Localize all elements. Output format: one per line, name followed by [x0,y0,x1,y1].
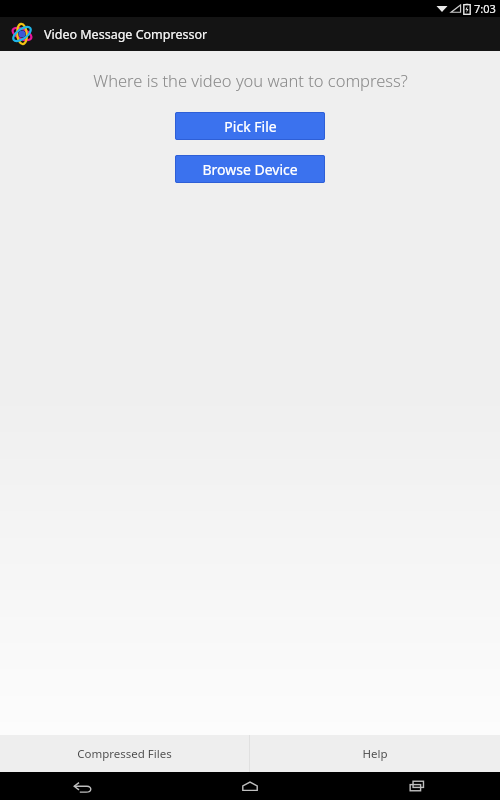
button[interactable]: Compressed Files [0,735,249,772]
staticText: Help [362,746,388,762]
staticText: Browse Device [202,160,298,179]
staticText: 7:03 [474,1,496,16]
button[interactable]: Back [0,772,166,800]
button[interactable]: Pick File [175,112,325,140]
staticText: Pick File [224,117,277,136]
staticText: Compressed Files [77,746,172,762]
staticText: Where is the video you want to compress? [93,69,408,91]
staticText: Video Message Compressor [44,26,208,43]
button[interactable]: Help [250,735,500,772]
button[interactable]: Browse Device [175,155,325,183]
button[interactable]: Home [166,772,333,800]
button[interactable]: Recent apps [333,772,500,800]
